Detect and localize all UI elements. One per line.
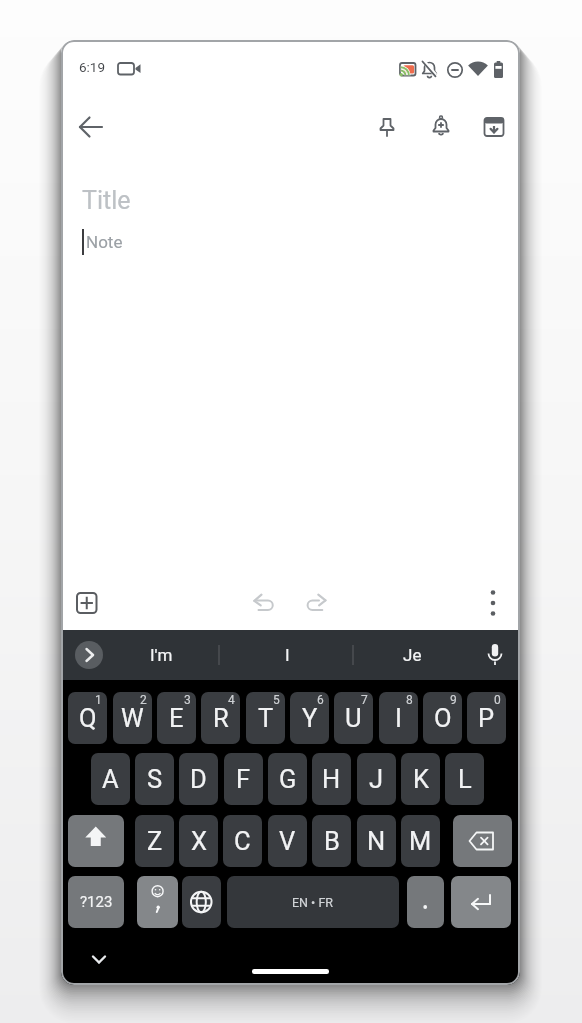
button[interactable]: I [257,635,317,675]
staticText: Je [403,645,422,665]
staticText: R [213,703,229,733]
button[interactable] [65,585,113,633]
staticText: T [258,703,274,733]
button[interactable]: D [179,753,218,805]
staticText: X [191,826,207,856]
button[interactable] [419,105,463,149]
staticText: Title [82,186,131,215]
staticText: D [190,764,207,794]
button[interactable]: E [157,692,196,744]
button[interactable]: Q [68,692,107,744]
button[interactable]: R [201,692,240,744]
button[interactable]: X [179,815,218,867]
button[interactable]: M [401,815,440,867]
staticText: Z [147,826,163,856]
button[interactable]: I'm [131,635,191,675]
staticText: S [147,764,163,794]
staticText: 4 [228,693,235,707]
staticText: C [234,826,251,856]
staticText: Y [302,703,318,733]
staticText: 5 [273,693,280,707]
staticText: P [478,703,495,733]
staticText: F [236,764,251,794]
staticText: 6 [317,693,324,707]
staticText: 9 [450,693,457,707]
button[interactable] [365,105,409,149]
staticText: 7 [361,693,368,707]
staticText: Note [86,232,123,252]
button[interactable] [75,641,103,669]
staticText: E [169,703,184,733]
staticText: A [102,764,119,794]
staticText: M [409,826,432,856]
staticText: 8 [406,693,413,707]
button[interactable]: N [357,815,396,867]
button[interactable] [237,581,285,629]
button[interactable]: Y [290,692,329,744]
button[interactable]: I [379,692,418,744]
button[interactable] [85,945,113,973]
staticText: 0 [494,693,501,707]
button[interactable] [407,876,444,928]
staticText: W [121,703,144,733]
button[interactable]: P [467,692,506,744]
button[interactable] [137,876,178,928]
staticText: 1 [95,693,102,707]
staticText: L [458,764,472,794]
button[interactable] [453,815,512,867]
button[interactable]: Je [382,635,442,675]
button[interactable]: F [224,753,263,805]
staticText: 3 [184,693,191,707]
button[interactable] [451,876,511,928]
button[interactable]: B [312,815,351,867]
button[interactable] [470,579,516,625]
button[interactable]: G [268,753,307,805]
button[interactable]: U [334,692,373,744]
staticText: J [369,764,384,794]
staticText: I'm [150,645,173,665]
button[interactable]: K [401,753,440,805]
button[interactable]: W [113,692,152,744]
button[interactable]: A [91,753,130,805]
staticText: Q [79,703,97,733]
button[interactable] [68,815,124,867]
button[interactable]: T [246,692,285,744]
staticText: U [345,703,362,733]
staticText: B [324,826,340,856]
staticText: ?123 [80,893,113,911]
button[interactable]: O [423,692,462,744]
staticText: H [322,764,341,794]
button[interactable]: J [357,753,396,805]
staticText: O [434,703,452,733]
button[interactable]: EN • FR [227,876,399,928]
button[interactable]: L [445,753,484,805]
button[interactable]: H [312,753,351,805]
button[interactable] [182,876,221,928]
button[interactable]: Z [135,815,174,867]
staticText: N [367,826,386,856]
staticText: 6:19 [79,59,106,75]
button[interactable] [291,581,339,629]
staticText: I [285,645,290,665]
staticText: EN • FR [292,895,334,910]
button[interactable] [477,635,515,675]
staticText: K [413,764,429,794]
staticText: G [279,764,297,794]
button[interactable]: S [135,753,174,805]
staticText: 2 [140,693,147,707]
button[interactable] [69,105,113,149]
button[interactable] [472,105,516,149]
staticText: V [279,826,296,856]
button[interactable]: V [268,815,307,867]
button[interactable]: ?123 [68,876,124,928]
button[interactable]: C [223,815,262,867]
staticText: I [395,703,402,733]
button[interactable] [252,969,329,974]
